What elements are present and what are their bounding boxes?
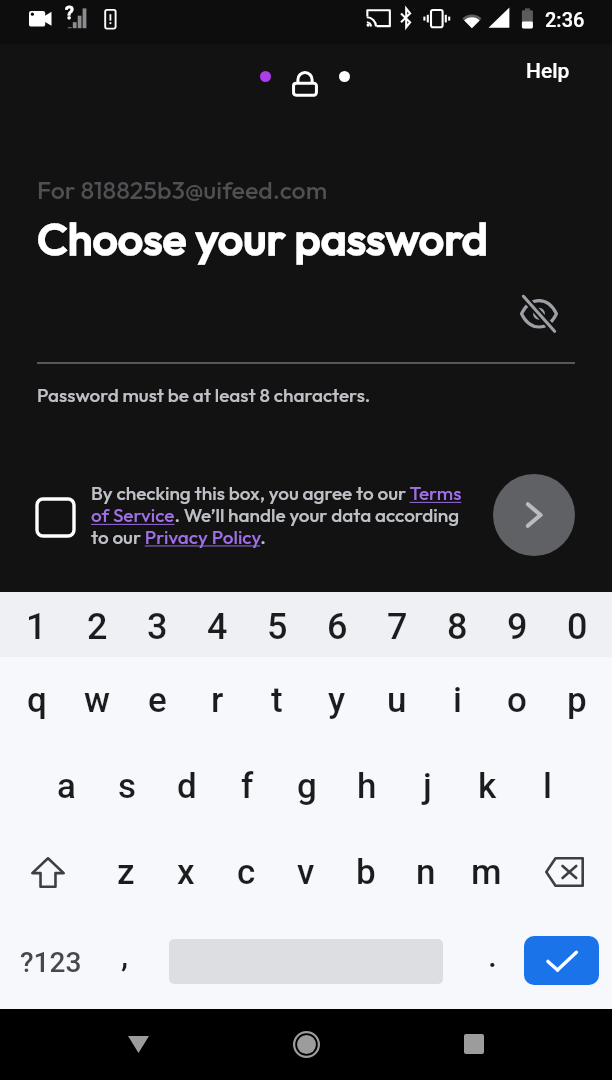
button[interactable]: e bbox=[127, 657, 187, 743]
button[interactable]: v bbox=[276, 829, 336, 915]
staticText: 8 bbox=[447, 606, 468, 648]
button[interactable]: c bbox=[216, 829, 276, 915]
button[interactable]: i bbox=[427, 657, 487, 743]
staticText: s bbox=[118, 766, 137, 807]
staticText: 2:36 bbox=[545, 8, 585, 31]
button[interactable]: p bbox=[547, 657, 607, 743]
staticText: u bbox=[387, 680, 407, 721]
staticText: g bbox=[297, 766, 317, 807]
button[interactable]: Show password bbox=[515, 289, 563, 337]
staticText: Help bbox=[526, 59, 570, 84]
staticText: z bbox=[117, 852, 135, 893]
staticText: k bbox=[478, 766, 497, 807]
button[interactable]: Help bbox=[505, 51, 612, 92]
staticText: m bbox=[471, 852, 502, 893]
button[interactable]: b bbox=[336, 829, 396, 915]
staticText: 6 bbox=[327, 606, 348, 648]
staticText: n bbox=[416, 852, 436, 893]
staticText: ?123 bbox=[20, 946, 82, 979]
button[interactable]: u bbox=[367, 657, 427, 743]
button[interactable]: 1 bbox=[6, 596, 67, 657]
staticText: Choose your password bbox=[37, 210, 488, 267]
button[interactable]: Shift bbox=[0, 829, 96, 915]
staticText: 5 bbox=[267, 606, 288, 648]
staticText: c bbox=[237, 852, 256, 893]
button[interactable]: k bbox=[457, 743, 517, 829]
staticText: 0 bbox=[567, 606, 588, 648]
button[interactable]: r bbox=[187, 657, 247, 743]
button[interactable]: l bbox=[517, 743, 577, 829]
staticText: t bbox=[271, 680, 283, 721]
staticText: a bbox=[57, 766, 76, 807]
staticText: , bbox=[121, 937, 129, 975]
staticText: r bbox=[211, 680, 224, 721]
button[interactable]: 0 bbox=[547, 596, 607, 657]
staticText: i bbox=[453, 680, 462, 721]
button[interactable]: 5 bbox=[247, 596, 307, 657]
button[interactable]: q bbox=[6, 657, 67, 743]
staticText: b bbox=[356, 852, 376, 893]
button[interactable]: Next bbox=[493, 474, 575, 556]
staticText: w bbox=[84, 680, 110, 721]
staticText: 9 bbox=[507, 606, 528, 648]
staticText: o bbox=[507, 680, 527, 721]
button[interactable]: a bbox=[36, 743, 97, 829]
button[interactable]: n bbox=[396, 829, 456, 915]
staticText: q bbox=[27, 680, 47, 721]
staticText: ? bbox=[65, 2, 74, 23]
button[interactable]: 8 bbox=[427, 596, 487, 657]
staticText: 4 bbox=[207, 606, 228, 648]
staticText: 3 bbox=[147, 606, 168, 648]
button[interactable]: Back bbox=[98, 1009, 178, 1080]
staticText: . bbox=[488, 937, 497, 975]
button[interactable]: Done bbox=[524, 936, 599, 985]
button[interactable]: x bbox=[156, 829, 216, 915]
staticText: l bbox=[543, 766, 552, 807]
staticText: h bbox=[357, 766, 377, 807]
button[interactable]: Home bbox=[276, 1015, 336, 1075]
button[interactable]: 3 bbox=[127, 596, 187, 657]
button[interactable]: g bbox=[277, 743, 337, 829]
button[interactable]: y bbox=[307, 657, 367, 743]
button[interactable]: 7 bbox=[367, 596, 427, 657]
button[interactable]: 9 bbox=[487, 596, 547, 657]
staticText: 7 bbox=[387, 606, 408, 648]
staticText: x bbox=[177, 852, 195, 893]
button[interactable]: Backspace bbox=[516, 829, 612, 915]
button[interactable]: m bbox=[456, 829, 516, 915]
button[interactable]: h bbox=[337, 743, 397, 829]
staticText: v bbox=[297, 852, 315, 893]
staticText: 2 bbox=[87, 606, 108, 648]
staticText: 1 bbox=[26, 606, 47, 648]
button[interactable]: ?123 bbox=[0, 915, 101, 1009]
staticText: f bbox=[241, 766, 254, 807]
button[interactable]: , bbox=[101, 915, 149, 1009]
button[interactable]: j bbox=[397, 743, 457, 829]
button[interactable]: Recent apps bbox=[434, 1009, 514, 1080]
button[interactable]: d bbox=[157, 743, 217, 829]
button[interactable]: 2 bbox=[67, 596, 127, 657]
button[interactable]: . bbox=[460, 915, 524, 1009]
button[interactable]: z bbox=[96, 829, 156, 915]
staticText: Password must be at least 8 characters. bbox=[37, 383, 371, 407]
staticText: j bbox=[423, 766, 432, 807]
staticText: For 818825b3@uifeed.com bbox=[37, 174, 328, 206]
button[interactable]: s bbox=[97, 743, 157, 829]
staticText: p bbox=[567, 680, 587, 721]
staticText: y bbox=[328, 680, 346, 721]
button[interactable]: w bbox=[67, 657, 127, 743]
button[interactable]: t bbox=[247, 657, 307, 743]
staticText: d bbox=[177, 766, 197, 807]
button[interactable]: f bbox=[217, 743, 277, 829]
button[interactable]: 4 bbox=[187, 596, 247, 657]
staticText: e bbox=[148, 680, 167, 721]
button[interactable]: 6 bbox=[307, 596, 367, 657]
button[interactable]: Agree to terms checkbox bbox=[37, 499, 74, 536]
button[interactable]: o bbox=[487, 657, 547, 743]
staticText: By checking this box, you agree to our T… bbox=[91, 481, 465, 549]
